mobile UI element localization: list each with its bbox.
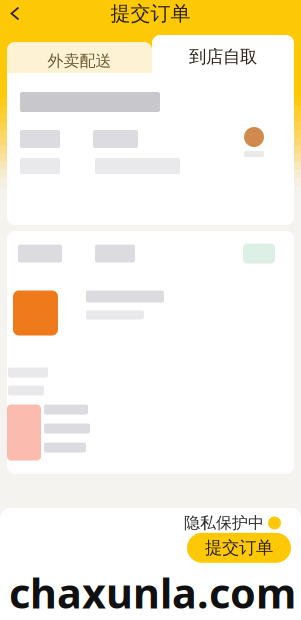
staticText: 隐私保护中	[184, 513, 264, 533]
staticText: 提交订单	[110, 1, 190, 26]
button[interactable]	[7, 73, 294, 225]
button[interactable]: 外卖配送	[7, 35, 152, 73]
button[interactable]: 提交订单	[187, 533, 291, 563]
button[interactable]: Back	[0, 0, 30, 27]
staticText: 外卖配送	[47, 51, 111, 71]
button[interactable]: 到店自取	[152, 35, 294, 73]
staticText: 提交订单	[205, 537, 273, 558]
staticText: 到店自取	[189, 46, 257, 67]
staticText: chaxunla.com	[9, 565, 296, 620]
